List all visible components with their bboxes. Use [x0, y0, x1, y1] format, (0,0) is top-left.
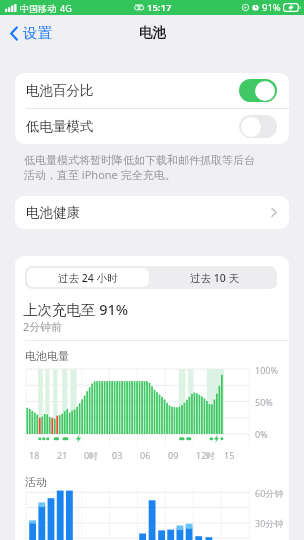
- staticText: 4G: [60, 2, 72, 14]
- staticText: 12时: [196, 449, 216, 461]
- staticText: 上次充电至 91%: [23, 299, 129, 319]
- staticText: 03: [112, 449, 123, 461]
- staticText: 活动: [25, 475, 47, 489]
- button[interactable]: 低电量模式: [15, 109, 289, 144]
- button[interactable]: 过去 10 天: [151, 266, 277, 289]
- staticText: 低电量模式: [26, 118, 94, 135]
- staticText: 91%: [262, 1, 281, 14]
- staticText: 中国移动: [20, 3, 56, 14]
- button[interactable]: On: [239, 79, 277, 102]
- staticText: 电池电量: [25, 349, 69, 363]
- staticText: 过去 24 小时: [58, 271, 118, 285]
- button[interactable]: 设置: [10, 15, 52, 51]
- staticText: 2分钟前: [23, 319, 63, 334]
- staticText: 30分钟: [255, 517, 284, 529]
- staticText: 15:17: [147, 1, 172, 14]
- staticText: 06: [140, 449, 151, 461]
- staticText: 低电量模式将暂时降低如下载和邮件抓取等后台: [24, 153, 255, 167]
- button[interactable]: 电池百分比: [15, 73, 289, 108]
- button[interactable]: 过去 24 小时: [27, 268, 149, 287]
- staticText: 21: [57, 449, 68, 461]
- staticText: 设置: [23, 24, 52, 42]
- button[interactable]: 电池健康: [15, 196, 289, 229]
- staticText: 0%: [255, 428, 268, 440]
- staticText: 15: [224, 449, 235, 461]
- staticText: 电池健康: [26, 204, 80, 221]
- staticText: 50%: [255, 396, 273, 408]
- staticText: 过去 10 天: [190, 271, 239, 285]
- staticText: 0时: [84, 449, 99, 461]
- staticText: 09: [168, 449, 179, 461]
- staticText: 60分钟: [255, 487, 284, 499]
- staticText: 100%: [255, 364, 278, 376]
- staticText: 活动，直至 iPhone 完全充电。: [24, 167, 176, 182]
- staticText: 电池百分比: [26, 82, 94, 99]
- staticText: 电池: [139, 24, 166, 41]
- staticText: 18: [29, 449, 40, 461]
- button[interactable]: Off: [239, 115, 277, 138]
